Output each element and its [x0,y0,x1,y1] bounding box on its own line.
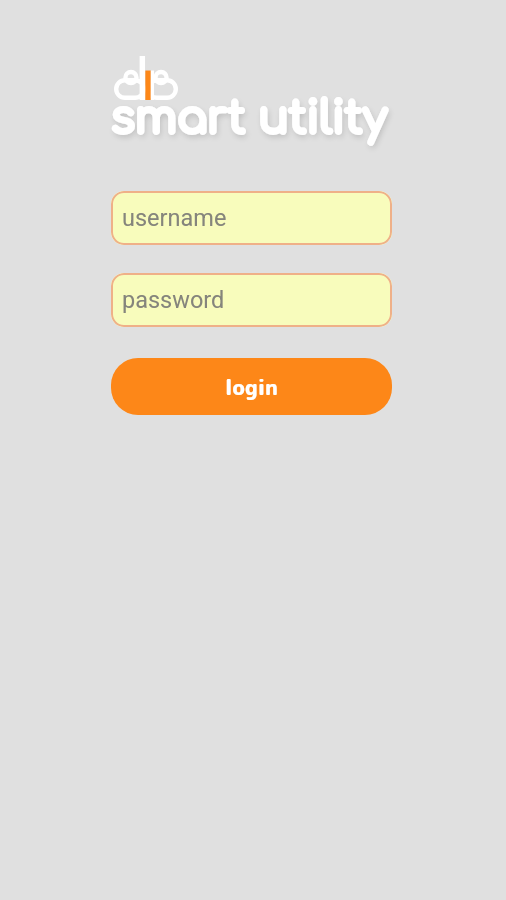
other: Smart Utility logo [114,56,178,100]
button[interactable]: login [111,358,392,415]
staticText: smart utility [111,94,388,144]
staticText: password [122,286,225,314]
staticText: username [122,204,227,232]
staticText: login [225,372,278,401]
button[interactable]: password [111,273,392,327]
button[interactable]: username [111,191,392,245]
staticText: smart utility [111,94,388,144]
